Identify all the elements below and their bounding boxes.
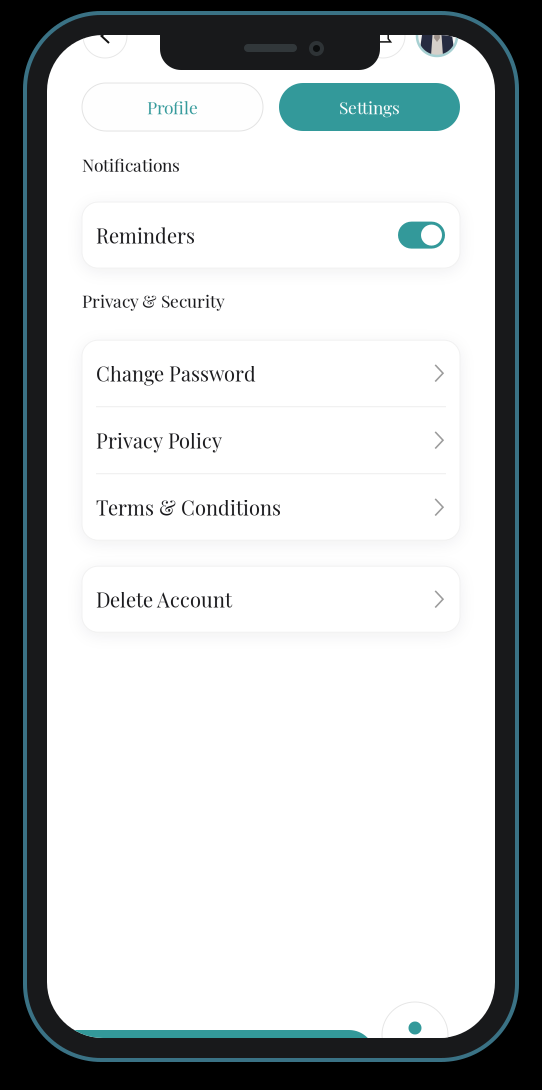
staticText: Delete Account: [96, 586, 232, 613]
staticText: Terms & Conditions: [96, 494, 281, 521]
button[interactable]: Account: [415, 14, 459, 58]
button[interactable]: Change Password: [82, 340, 460, 406]
staticText: Reminders: [96, 222, 195, 248]
staticText: Settings: [339, 95, 400, 118]
button[interactable]: Terms & Conditions: [82, 474, 460, 540]
button[interactable]: Add: [382, 1002, 448, 1068]
button[interactable]: Notifications: [361, 14, 405, 58]
staticText: Notifications: [82, 153, 180, 176]
button[interactable]: Settings: [279, 83, 460, 131]
staticText: Change Password: [96, 360, 256, 387]
staticText: Privacy Policy: [96, 427, 222, 454]
button[interactable]: Delete Account: [82, 566, 460, 632]
button[interactable]: Tab bar: [1, 1030, 375, 1082]
button[interactable]: Profile: [82, 83, 263, 131]
staticText: Privacy & Security: [82, 289, 225, 312]
button[interactable]: Privacy Policy: [82, 407, 460, 473]
button[interactable]: Back: [83, 14, 127, 58]
staticText: Profile: [147, 95, 198, 118]
button[interactable]: Reminders toggle: [398, 222, 445, 249]
